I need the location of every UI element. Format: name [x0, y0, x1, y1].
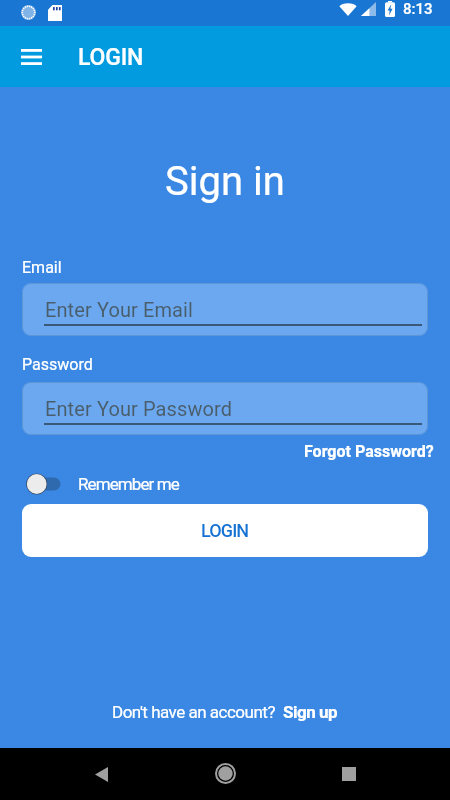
staticText: Remember me [78, 474, 179, 494]
staticText: Email [22, 258, 62, 277]
staticText: Sign up [283, 702, 338, 722]
staticText: Don't have an account? [112, 702, 283, 722]
staticText: LOGIN [78, 44, 144, 71]
staticText: Password [22, 355, 93, 374]
button[interactable]: LOGIN [22, 504, 428, 557]
staticText: Forgot Password? [304, 442, 434, 461]
staticText: LOGIN [201, 520, 249, 541]
staticText: 8:13 [403, 0, 433, 18]
button[interactable]: Enter Your Email [22, 283, 428, 336]
staticText: Enter Your Password [45, 397, 233, 420]
button[interactable]: Don't have an account? [0, 702, 450, 722]
button[interactable]: Enter Your Password [22, 382, 428, 435]
button[interactable]: Recents [325, 750, 373, 798]
button[interactable]: Home [201, 749, 249, 797]
button[interactable]: Forgot Password? [304, 442, 434, 461]
button[interactable]: Back [77, 750, 125, 798]
staticText: Sign in [0, 158, 450, 205]
button[interactable]: Menu [5, 26, 57, 87]
staticText: Enter Your Email [45, 298, 193, 321]
button[interactable]: Remember me [22, 472, 179, 496]
